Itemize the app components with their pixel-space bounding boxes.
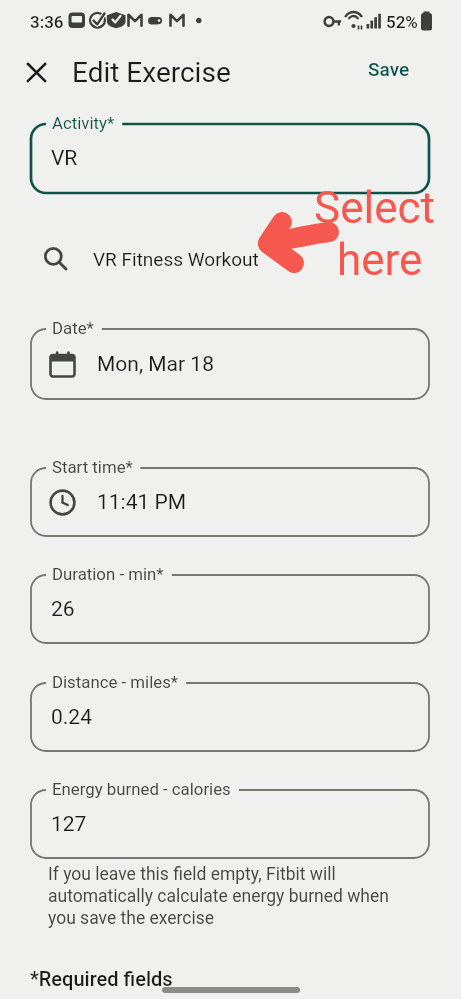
- staticText: VR Fitness Workout: [93, 248, 259, 270]
- staticText: here: [337, 234, 423, 286]
- button[interactable]: Close: [16, 52, 56, 92]
- staticText: Distance - miles*: [52, 672, 179, 692]
- staticText: *Required fields: [30, 967, 173, 990]
- button[interactable]: Distance - miles*: [31, 683, 429, 751]
- button[interactable]: Save: [356, 50, 422, 88]
- staticText: Select: [314, 182, 435, 234]
- staticText: Energy burned - calories: [52, 779, 231, 799]
- staticText: Save: [368, 58, 410, 80]
- button[interactable]: Start time*: [31, 468, 429, 536]
- button[interactable]: Duration - min*: [31, 575, 429, 643]
- staticText: VR: [51, 146, 78, 171]
- button[interactable]: VR Fitness Workout: [0, 233, 461, 285]
- staticText: Mon, Mar 18: [97, 352, 214, 377]
- staticText: Start time*: [52, 457, 133, 477]
- staticText: If you leave this field empty, Fitbit wi…: [48, 864, 400, 928]
- staticText: 11:41 PM: [97, 490, 187, 515]
- button[interactable]: Activity*: [31, 124, 429, 193]
- staticText: 26: [51, 597, 75, 622]
- staticText: Duration - min*: [52, 564, 164, 584]
- staticText: Date*: [52, 318, 94, 338]
- staticText: Edit Exercise: [72, 56, 231, 89]
- button[interactable]: Date*: [31, 329, 429, 399]
- staticText: Activity*: [52, 113, 115, 133]
- button[interactable]: Energy burned - calories: [31, 790, 429, 858]
- staticText: 127: [51, 812, 87, 837]
- staticText: 3:36: [30, 12, 64, 32]
- staticText: 0.24: [51, 705, 92, 730]
- staticText: 52%: [386, 12, 418, 32]
